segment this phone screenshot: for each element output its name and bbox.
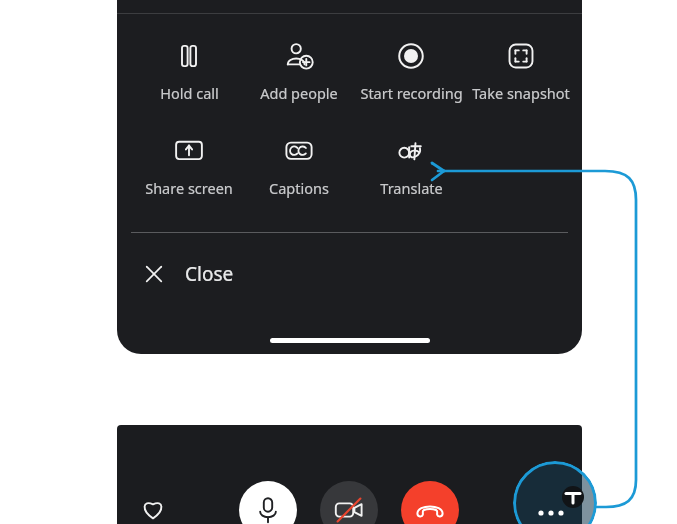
staticText: Translate [380, 178, 443, 198]
button[interactable]: End call [401, 481, 459, 524]
button[interactable]: Take snapshot [466, 38, 576, 107]
button[interactable]: Turn camera off [320, 481, 378, 524]
staticText: Hold call [160, 83, 219, 103]
staticText: Add people [260, 83, 338, 103]
button[interactable]: Favourite [125, 481, 181, 524]
staticText: Share screen [145, 178, 233, 198]
button[interactable]: Share screen [134, 133, 244, 202]
staticText: Start recording [360, 83, 463, 103]
button[interactable]: Mute microphone [239, 481, 297, 524]
button[interactable]: Add people [244, 38, 354, 107]
button[interactable]: Translate [356, 133, 466, 202]
button[interactable]: Start recording [356, 38, 466, 107]
button[interactable]: More options [513, 461, 597, 524]
staticText: Take snapshot [472, 83, 570, 103]
button[interactable]: Close [131, 248, 381, 300]
staticText: Captions [269, 178, 329, 198]
staticText: Close [185, 261, 234, 287]
button[interactable]: Hold call [134, 38, 244, 107]
button[interactable]: Captions [244, 133, 354, 202]
